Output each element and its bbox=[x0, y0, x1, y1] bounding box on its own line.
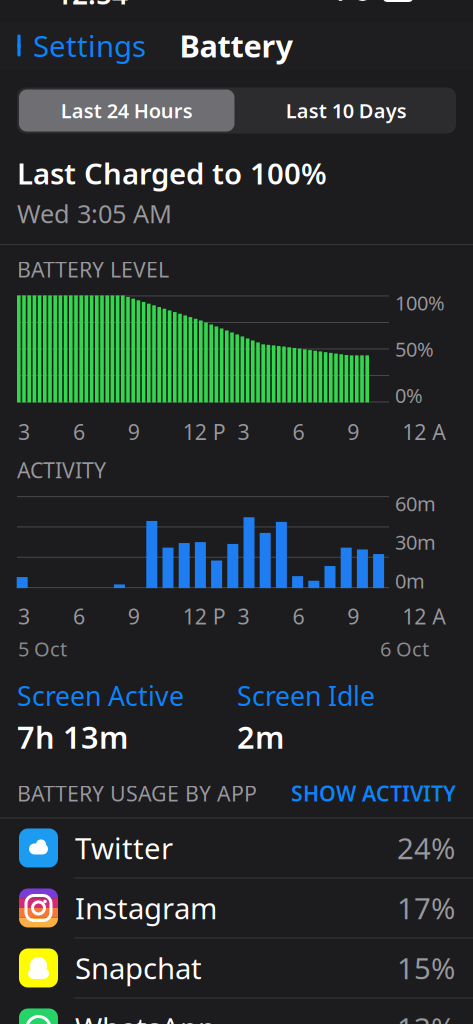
staticText: 24% bbox=[397, 828, 455, 867]
button[interactable]: Settings bbox=[0, 20, 160, 71]
staticText: Settings bbox=[33, 26, 146, 65]
staticText: WhatsApp bbox=[75, 1008, 216, 1024]
staticText: Last Charged to 100% bbox=[17, 153, 327, 192]
button[interactable]: WhatsApp bbox=[0, 998, 473, 1024]
staticText: 17% bbox=[397, 888, 455, 927]
staticText: 9 bbox=[347, 602, 359, 630]
staticText: 30m bbox=[395, 529, 436, 555]
staticText: 12 P bbox=[183, 417, 226, 446]
staticText: 12 P bbox=[183, 602, 226, 630]
staticText: 100% bbox=[395, 289, 445, 316]
staticText: BATTERY USAGE BY APP bbox=[17, 779, 257, 807]
staticText: 60m bbox=[395, 490, 436, 517]
staticText: 3 bbox=[237, 602, 249, 630]
staticText: 3 bbox=[18, 417, 30, 446]
staticText: 50% bbox=[395, 336, 434, 362]
button[interactable]: Last 24 Hours bbox=[17, 87, 236, 133]
staticText: 15% bbox=[397, 948, 455, 987]
staticText: Twitter bbox=[75, 828, 173, 867]
staticText: 0% bbox=[395, 382, 423, 408]
staticText: 3 bbox=[237, 417, 249, 446]
staticText: 6 bbox=[73, 417, 85, 446]
staticText: 5 Oct bbox=[18, 635, 67, 662]
button[interactable]: SHOW ACTIVITY bbox=[291, 779, 456, 807]
staticText: Instagram bbox=[75, 888, 217, 927]
staticText: Last 10 Days bbox=[286, 97, 407, 124]
staticText: 7h 13m bbox=[17, 716, 128, 757]
button[interactable]: Snapchat bbox=[0, 938, 473, 998]
staticText: 3 bbox=[18, 602, 30, 630]
staticText: 6 bbox=[292, 602, 304, 630]
staticText: SHOW ACTIVITY bbox=[291, 779, 456, 807]
staticText: 50 bbox=[389, 0, 407, 4]
staticText: ACTIVITY bbox=[17, 456, 106, 484]
button[interactable]: Last 10 Days bbox=[236, 87, 456, 133]
staticText: Screen Idle bbox=[237, 678, 375, 713]
staticText: 6 bbox=[292, 417, 304, 446]
staticText: Snapchat bbox=[75, 948, 202, 987]
staticText: 2m bbox=[237, 716, 284, 757]
staticText: Last 24 Hours bbox=[61, 97, 193, 124]
staticText: 12:54 bbox=[56, 0, 128, 12]
staticText: Battery bbox=[179, 25, 293, 66]
staticText: 12 A bbox=[402, 602, 446, 630]
button[interactable]: Instagram bbox=[0, 878, 473, 938]
staticText: Screen Active bbox=[17, 678, 184, 713]
staticText: BATTERY LEVEL bbox=[17, 255, 169, 283]
staticText: 6 Oct bbox=[380, 635, 429, 662]
button[interactable]: Twitter bbox=[0, 818, 473, 878]
staticText: 13% bbox=[397, 1008, 455, 1024]
staticText: 12 A bbox=[402, 417, 446, 446]
staticText: 9 bbox=[347, 417, 359, 446]
staticText: 0m bbox=[395, 568, 425, 594]
staticText: 9 bbox=[128, 417, 140, 446]
staticText: 9 bbox=[128, 602, 140, 630]
staticText: Wed 3:05 AM bbox=[17, 196, 172, 230]
staticText: 6 bbox=[73, 602, 85, 630]
